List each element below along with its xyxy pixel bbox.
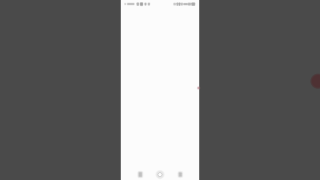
button[interactable]: Recent apps — [134, 168, 146, 180]
button[interactable]: Status bar — [121, 0, 199, 10]
button[interactable]: Home — [154, 168, 166, 180]
button[interactable]: Back — [174, 168, 186, 180]
